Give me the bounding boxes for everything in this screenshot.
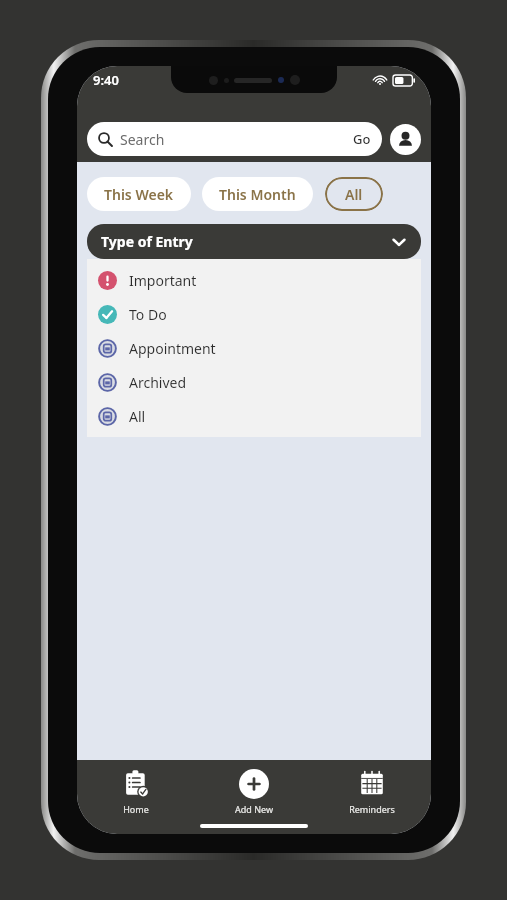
button[interactable]: This Week (87, 177, 191, 211)
button[interactable]: Important (87, 263, 421, 297)
button[interactable]: This Month (202, 177, 313, 211)
button[interactable]: Reminders (313, 760, 431, 818)
button[interactable]: Appointment (87, 331, 421, 365)
staticText: 9:40 (93, 71, 119, 89)
staticText: To Do (129, 305, 167, 324)
button[interactable]: Search (87, 122, 382, 156)
staticText: Search (120, 130, 165, 149)
staticText: Type of Entry (101, 232, 193, 251)
staticText: Important (129, 271, 197, 290)
staticText: This Week (104, 185, 174, 204)
staticText: Add New (235, 803, 273, 815)
button[interactable]: Type of Entry (87, 224, 421, 259)
staticText: Appointment (129, 339, 216, 358)
staticText: Go (353, 130, 371, 148)
staticText: Reminders (349, 803, 395, 815)
button[interactable]: Archived (87, 365, 421, 399)
staticText: This Month (219, 185, 296, 204)
button[interactable]: Add New (195, 760, 313, 818)
staticText: All (129, 407, 146, 426)
button[interactable]: To Do (87, 297, 421, 331)
button[interactable]: All (87, 399, 421, 433)
staticText: All (345, 185, 363, 204)
other: Add New (239, 769, 269, 799)
button[interactable]: All (325, 177, 383, 211)
staticText: Archived (129, 373, 187, 392)
staticText: Home (123, 803, 149, 815)
button[interactable]: Profile (390, 124, 421, 155)
button[interactable]: Home (77, 760, 195, 818)
